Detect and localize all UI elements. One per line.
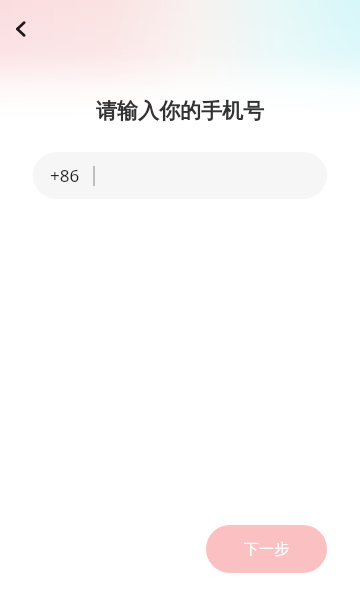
staticText: 请输入你的手机号: [0, 98, 360, 124]
button[interactable]: 下一步: [206, 525, 327, 573]
staticText: 下一步: [244, 540, 289, 559]
button[interactable]: +86: [33, 152, 327, 199]
button[interactable]: Back: [4, 12, 38, 46]
staticText: +86: [50, 164, 80, 187]
